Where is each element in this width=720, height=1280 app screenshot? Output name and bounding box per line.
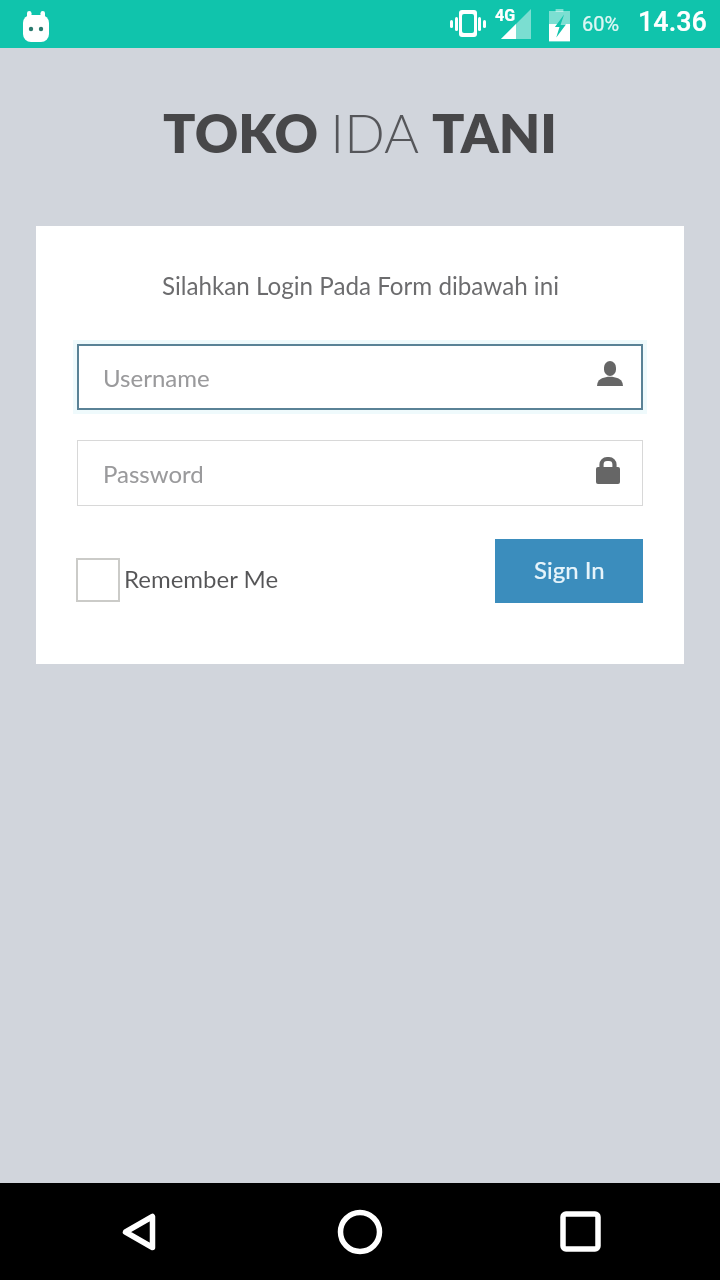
other: Android	[23, 11, 49, 43]
button[interactable]: Recent apps	[532, 1183, 628, 1280]
button[interactable]: Username	[77, 344, 643, 410]
staticText: Password	[103, 459, 204, 488]
staticText: 4G	[495, 6, 516, 25]
other: User	[597, 361, 623, 386]
other: Password	[596, 458, 620, 484]
button[interactable]: Sign In	[495, 539, 643, 603]
staticText: 60%	[582, 12, 620, 35]
staticText: Remember Me	[124, 564, 279, 593]
button[interactable]: Password	[77, 440, 643, 506]
button[interactable]: Back	[91, 1183, 187, 1280]
staticText: TOKO IDA TANI	[163, 100, 557, 164]
other: Mobile signal 4G	[494, 6, 534, 42]
other: Battery 60 percent, charging	[548, 9, 571, 40]
button[interactable]: Remember Me	[76, 558, 279, 602]
other: Vibrate mode	[450, 9, 488, 39]
staticText: Username	[103, 363, 210, 392]
staticText: Silahkan Login Pada Form dibawah ini	[162, 271, 559, 300]
button[interactable]: Home	[312, 1183, 408, 1280]
staticText: 14.36	[638, 6, 707, 38]
staticText: Sign In	[534, 555, 605, 584]
